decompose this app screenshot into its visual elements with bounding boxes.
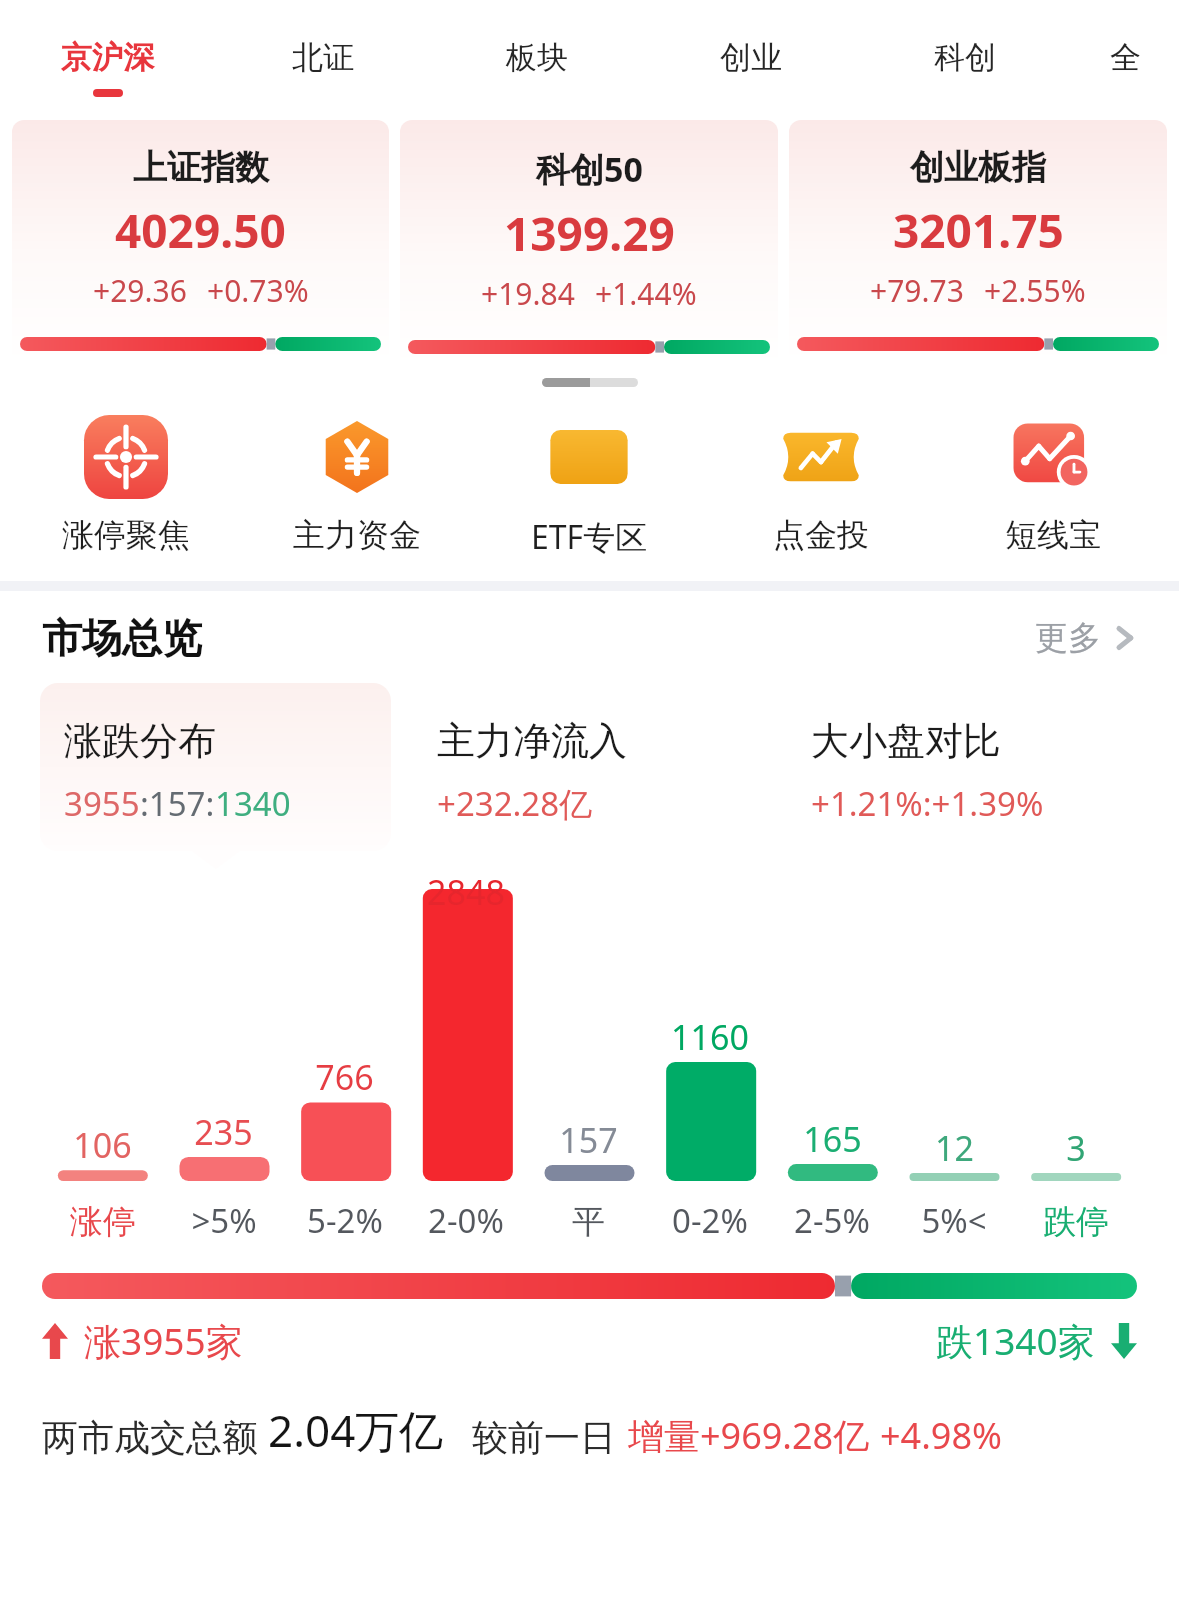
- staticText: 主力净流入: [437, 717, 627, 765]
- staticText: 大小盘对比: [811, 717, 1001, 765]
- staticText: 平: [572, 1201, 605, 1243]
- staticText: 3955: [64, 781, 140, 826]
- button[interactable]: 更多: [1035, 617, 1137, 659]
- staticText: 1340: [215, 781, 291, 826]
- staticText: +19.84: [481, 273, 575, 314]
- button[interactable]: 短线宝: [937, 415, 1169, 555]
- staticText: 上证指数: [133, 146, 269, 189]
- staticText: 更多: [1035, 617, 1101, 659]
- button[interactable]: 创业: [644, 0, 858, 120]
- staticText: 涨停: [70, 1201, 136, 1243]
- staticText: 0-2%: [672, 1198, 748, 1243]
- staticText: 涨停聚焦: [62, 515, 190, 555]
- button[interactable]: 主力资金: [241, 415, 473, 555]
- button[interactable]: 北证: [215, 0, 430, 120]
- staticText: 两市成交总额: [42, 1415, 258, 1460]
- staticText: +2.55%: [984, 270, 1086, 311]
- button[interactable]: ETF专区: [473, 415, 705, 559]
- staticText: 3: [1066, 1125, 1086, 1171]
- button[interactable]: 创业板指: [789, 120, 1167, 363]
- staticText: 5%<: [921, 1198, 987, 1243]
- staticText: 增量+969.28亿: [628, 1411, 870, 1460]
- staticText: 较前一日: [472, 1415, 616, 1460]
- staticText: 1160: [671, 1014, 749, 1060]
- button[interactable]: 主力净流入: [413, 683, 765, 851]
- button[interactable]: 科创50: [400, 120, 778, 366]
- staticText: 4029.50: [115, 199, 286, 262]
- staticText: 165: [803, 1116, 862, 1162]
- staticText: 涨3955家: [84, 1315, 243, 1366]
- other: More: [1115, 621, 1137, 655]
- staticText: 106: [73, 1122, 132, 1168]
- staticText: 157: [559, 1117, 618, 1163]
- staticText: +232.28亿: [437, 781, 593, 826]
- staticText: 12: [935, 1125, 974, 1171]
- button[interactable]: 涨停聚焦: [10, 415, 241, 555]
- staticText: ETF专区: [531, 515, 648, 559]
- staticText: 2-5%: [794, 1198, 870, 1243]
- staticText: +1.21%:+1.39%: [811, 781, 1044, 826]
- staticText: 2-0%: [428, 1198, 504, 1243]
- staticText: 2.04万亿: [268, 1400, 444, 1460]
- button[interactable]: 涨跌分布: [40, 683, 391, 851]
- staticText: :157:: [140, 781, 215, 826]
- staticText: +1.44%: [595, 273, 697, 314]
- staticText: +29.36: [93, 270, 187, 311]
- staticText: 创业: [720, 38, 782, 77]
- staticText: 235: [194, 1109, 253, 1155]
- staticText: 766: [315, 1054, 374, 1100]
- staticText: 跌停: [1043, 1201, 1109, 1243]
- staticText: 1399.29: [504, 202, 675, 265]
- staticText: 短线宝: [1005, 515, 1101, 555]
- staticText: >5%: [191, 1198, 257, 1243]
- staticText: 京沪深: [61, 38, 154, 77]
- staticText: 2848: [427, 869, 505, 915]
- staticText: 板块: [506, 38, 568, 77]
- button[interactable]: 科创: [858, 0, 1072, 120]
- staticText: 科创50: [536, 146, 643, 192]
- button[interactable]: 全: [1072, 0, 1179, 120]
- staticText: 北证: [292, 38, 354, 77]
- button[interactable]: 板块: [430, 0, 644, 120]
- staticText: 市场总览: [42, 613, 202, 663]
- button[interactable]: 大小盘对比: [787, 683, 1139, 851]
- staticText: 全: [1110, 38, 1141, 77]
- staticText: 点金投: [773, 515, 869, 555]
- staticText: +0.73%: [207, 270, 309, 311]
- staticText: 创业板指: [910, 146, 1046, 189]
- staticText: 3201.75: [893, 199, 1064, 262]
- button[interactable]: 点金投: [705, 415, 937, 555]
- button[interactable]: 上证指数: [12, 120, 389, 363]
- button[interactable]: 京沪深: [0, 0, 215, 120]
- staticText: 科创: [934, 38, 996, 77]
- staticText: 5-2%: [307, 1198, 383, 1243]
- staticText: 涨跌分布: [64, 717, 216, 765]
- staticText: 主力资金: [293, 515, 421, 555]
- staticText: +4.98%: [880, 1411, 1002, 1460]
- staticText: +79.73: [870, 270, 964, 311]
- staticText: 跌1340家: [936, 1315, 1095, 1366]
